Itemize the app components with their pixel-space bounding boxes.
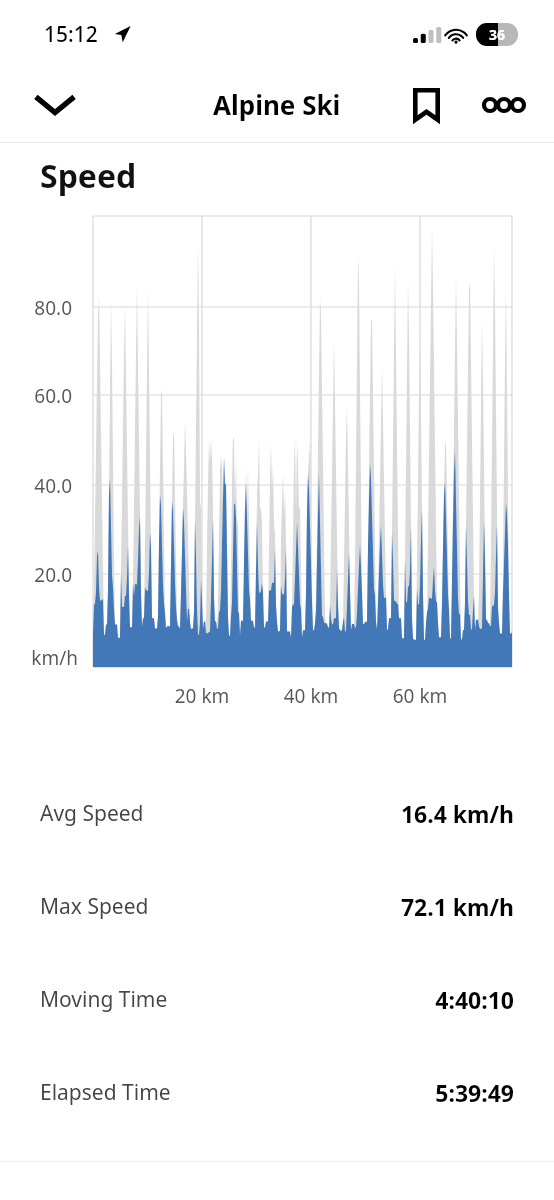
staticText: Elapsed Time <box>40 1078 171 1107</box>
staticText: Max Speed <box>40 892 149 921</box>
staticText: 80.0 <box>0 295 72 321</box>
staticText: 16.4 km/h <box>400 798 514 829</box>
button[interactable]: Collapse <box>26 76 84 134</box>
staticText: 60.0 <box>0 383 72 409</box>
button[interactable]: Avg Speed <box>0 767 554 860</box>
staticText: 72.1 km/h <box>400 891 514 922</box>
staticText: Avg Speed <box>40 799 144 828</box>
staticText: 5:39:49 <box>435 1077 514 1108</box>
staticText: 4:40:10 <box>435 984 514 1015</box>
staticText: 20.0 <box>0 562 72 588</box>
staticText: 20 km <box>157 683 247 709</box>
button[interactable]: Bookmark <box>398 77 454 133</box>
staticText: 15:12 <box>44 20 98 49</box>
staticText: 36 <box>489 25 506 44</box>
button[interactable]: Moving Time <box>0 953 554 1046</box>
button[interactable]: Elapsed Time <box>0 1046 554 1139</box>
staticText: km/h <box>0 645 78 671</box>
staticText: Alpine Ski <box>213 87 341 122</box>
staticText: 40.0 <box>0 473 72 499</box>
button[interactable]: More options <box>476 77 532 133</box>
staticText: Speed <box>40 154 137 198</box>
button[interactable]: Max Speed <box>0 860 554 953</box>
staticText: Moving Time <box>40 985 168 1014</box>
staticText: 60 km <box>375 683 465 709</box>
staticText: 40 km <box>266 683 356 709</box>
